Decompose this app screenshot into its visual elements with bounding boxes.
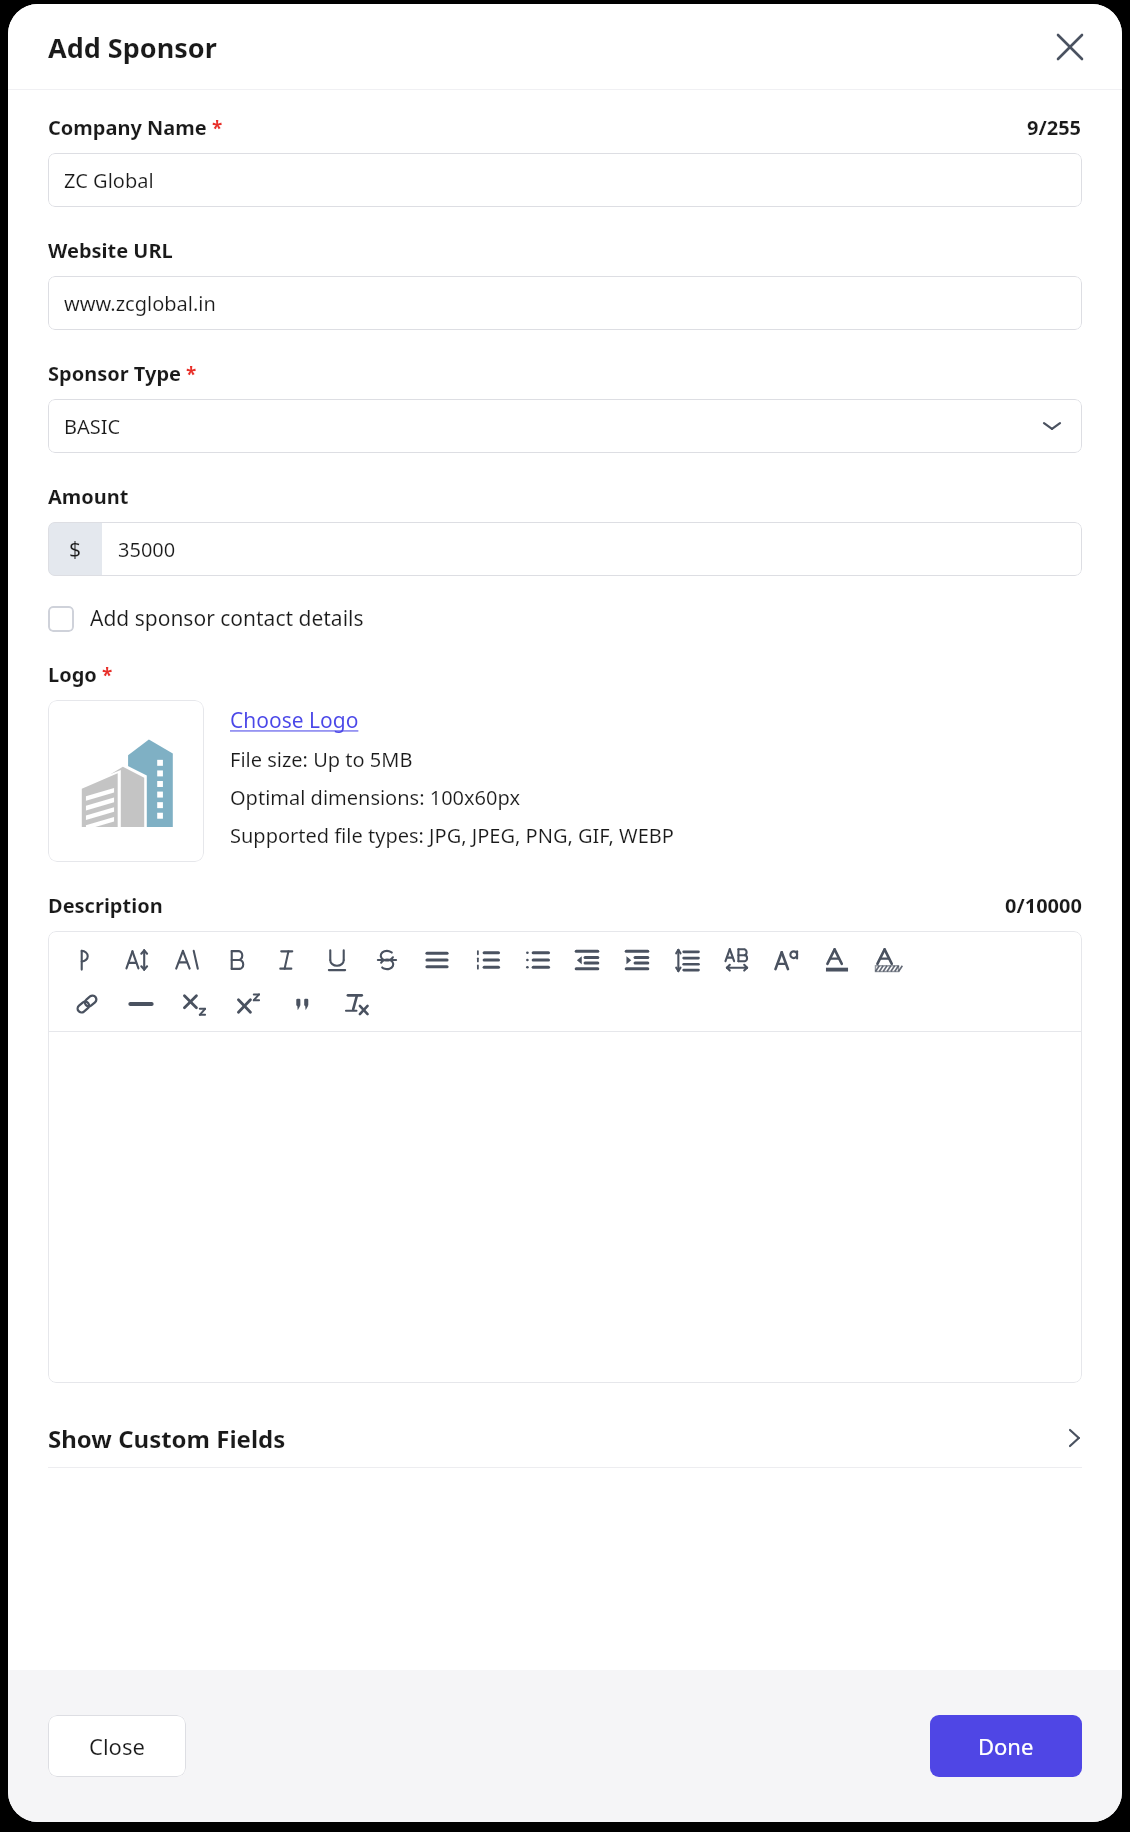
button[interactable]: Letter spacing: [722, 945, 752, 975]
button[interactable]: Close: [1048, 25, 1092, 69]
staticText: Optimal dimensions: 100x60px: [230, 784, 520, 811]
staticText: 0/10000: [1005, 892, 1082, 919]
staticText: Description: [48, 892, 163, 919]
button[interactable]: Done: [930, 1715, 1082, 1777]
button[interactable]: Clear formatting: [342, 989, 372, 1019]
button[interactable]: $: [48, 522, 1082, 576]
staticText: BASIC: [64, 413, 121, 440]
button[interactable]: Font family: [172, 945, 202, 975]
staticText: Supported file types: JPG, JPEG, PNG, GI…: [230, 822, 674, 849]
button[interactable]: Subscript: [180, 989, 210, 1019]
button[interactable]: Text case: [772, 945, 802, 975]
staticText: *: [212, 115, 223, 141]
staticText: Sponsor Type: [48, 360, 181, 387]
staticText: Company Name: [48, 114, 207, 141]
button[interactable]: www.zcglobal.in: [48, 276, 1082, 330]
button[interactable]: P: [72, 945, 102, 975]
button[interactable]: Font size: [122, 945, 152, 975]
button[interactable]: Outdent: [572, 945, 602, 975]
staticText: 9/255: [1027, 114, 1082, 141]
button[interactable]: Bullet list: [522, 945, 552, 975]
button[interactable]: Numbered list: [472, 945, 502, 975]
button[interactable]: Sponsor logo preview: [48, 700, 204, 862]
button[interactable]: Indent: [622, 945, 652, 975]
staticText: Logo: [48, 661, 97, 688]
staticText: *: [186, 361, 197, 387]
button[interactable]: ZC Global: [48, 153, 1082, 207]
button[interactable]: Superscript: [234, 989, 264, 1019]
staticText: www.zcglobal.in: [64, 290, 216, 317]
button[interactable]: Link: [72, 989, 102, 1019]
button[interactable]: Add sponsor contact details: [48, 604, 364, 633]
button[interactable]: Underline: [322, 945, 352, 975]
staticText: ZC Global: [64, 167, 154, 194]
staticText: Add Sponsor: [48, 29, 217, 66]
staticText: *: [102, 662, 113, 688]
button[interactable]: Close: [48, 1715, 186, 1777]
staticText: Done: [978, 1731, 1034, 1761]
button[interactable]: Line height: [672, 945, 702, 975]
staticText: Close: [89, 1731, 145, 1761]
staticText: $: [69, 535, 82, 564]
button[interactable]: Bold: [222, 945, 252, 975]
staticText: Add sponsor contact details: [90, 604, 364, 633]
staticText: Amount: [48, 483, 129, 510]
button[interactable]: Show Custom Fields: [48, 1409, 1082, 1467]
staticText: File size: Up to 5MB: [230, 746, 413, 773]
button[interactable]: Strikethrough: [372, 945, 402, 975]
button[interactable]: Horizontal rule: [126, 989, 156, 1019]
button[interactable]: Italic: [272, 945, 302, 975]
staticText: Website URL: [48, 237, 173, 264]
button[interactable]: Choose Logo: [230, 706, 359, 735]
staticText: 35000: [118, 536, 176, 563]
button[interactable]: Highlight: [872, 945, 902, 975]
button[interactable]: Text color: [822, 945, 852, 975]
staticText: Choose Logo: [230, 706, 359, 735]
button[interactable]: Align: [422, 945, 452, 975]
button[interactable]: BASIC: [48, 399, 1082, 453]
staticText: Show Custom Fields: [48, 1422, 286, 1455]
button[interactable]: Quote: [288, 989, 318, 1019]
